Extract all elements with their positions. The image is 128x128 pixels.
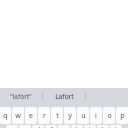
staticText: r [43, 111, 46, 121]
staticText: t [56, 111, 59, 121]
button[interactable]: u [77, 107, 89, 124]
button[interactable]: w [12, 107, 24, 124]
button[interactable]: t [51, 107, 63, 124]
button[interactable]: f [45, 125, 57, 128]
staticText: l [115, 125, 117, 128]
staticText: Lafort [55, 92, 74, 101]
button[interactable]: k [97, 125, 109, 128]
staticText: “lafort” [10, 92, 32, 101]
staticText: j [89, 125, 91, 128]
button[interactable]: r [38, 107, 50, 124]
button[interactable]: h [71, 125, 83, 128]
button[interactable]: d [32, 125, 44, 128]
button[interactable]: a [6, 125, 18, 128]
button[interactable]: Lafort [43, 88, 85, 105]
staticText: q [3, 111, 8, 121]
staticText: f [50, 125, 53, 128]
button[interactable]: g [58, 125, 70, 128]
button[interactable]: l [110, 125, 122, 128]
staticText: o [107, 111, 112, 121]
staticText: h [75, 125, 80, 128]
button[interactable]: i [90, 107, 102, 124]
staticText: w [15, 111, 21, 121]
button[interactable]: s [19, 125, 31, 128]
button[interactable]: “lafort” [0, 88, 42, 105]
button[interactable]: q [0, 107, 11, 124]
staticText: i [95, 111, 97, 121]
staticText: y [68, 111, 72, 121]
button[interactable]: p [116, 107, 128, 124]
staticText: d [36, 125, 41, 128]
button[interactable]: j [84, 125, 96, 128]
staticText: p [120, 111, 125, 121]
button[interactable]: o [103, 107, 115, 124]
button[interactable]: y [64, 107, 76, 124]
staticText: e [29, 111, 33, 121]
staticText: u [81, 111, 86, 121]
button[interactable]: e [25, 107, 37, 124]
staticText: k [101, 125, 105, 128]
